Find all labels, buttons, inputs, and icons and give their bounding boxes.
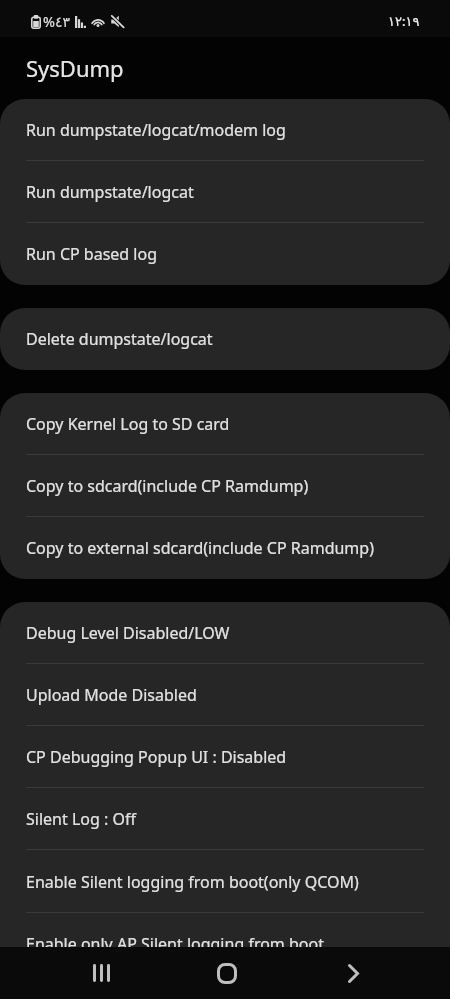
button[interactable]: Run dumpstate/logcat/modem log — [0, 99, 450, 161]
staticText: Copy Kernel Log to SD card — [26, 413, 230, 435]
button[interactable]: Copy Kernel Log to SD card — [0, 393, 450, 455]
staticText: Enable only AP Silent logging from boot — [26, 933, 324, 947]
button[interactable]: Back — [322, 947, 384, 999]
button[interactable]: CP Debugging Popup UI : Disabled — [0, 726, 450, 788]
button[interactable]: Run dumpstate/logcat — [0, 161, 450, 223]
staticText: %٤٣ — [43, 12, 70, 31]
staticText: SysDump — [26, 53, 124, 83]
staticText: Enable Silent logging from boot(only QCO… — [26, 871, 359, 893]
button[interactable]: Run CP based log — [0, 223, 450, 285]
button[interactable]: Copy to external sdcard(include CP Ramdu… — [0, 517, 450, 579]
button[interactable]: Copy to sdcard(include CP Ramdump) — [0, 455, 450, 517]
staticText: CP Debugging Popup UI : Disabled — [26, 746, 287, 768]
button[interactable]: Upload Mode Disabled — [0, 664, 450, 726]
button[interactable]: Home — [196, 947, 258, 999]
staticText: Copy to external sdcard(include CP Ramdu… — [26, 537, 374, 559]
button[interactable]: Delete dumpstate/logcat — [0, 308, 450, 370]
button[interactable]: Debug Level Disabled/LOW — [0, 602, 450, 664]
staticText: Run dumpstate/logcat — [26, 181, 194, 203]
staticText: Silent Log : Off — [26, 808, 136, 830]
button[interactable]: Silent Log : Off — [0, 788, 450, 850]
staticText: ١٢:١٩ — [388, 12, 420, 30]
button[interactable]: Enable Silent logging from boot(only QCO… — [0, 850, 450, 913]
staticText: Run CP based log — [26, 243, 157, 265]
button[interactable]: Recent apps — [70, 947, 132, 999]
staticText: Delete dumpstate/logcat — [26, 328, 213, 350]
staticText: Debug Level Disabled/LOW — [26, 622, 230, 644]
staticText: Upload Mode Disabled — [26, 684, 197, 706]
staticText: Run dumpstate/logcat/modem log — [26, 119, 286, 141]
button[interactable]: Enable only AP Silent logging from boot — [0, 913, 450, 947]
staticText: Copy to sdcard(include CP Ramdump) — [26, 475, 309, 497]
